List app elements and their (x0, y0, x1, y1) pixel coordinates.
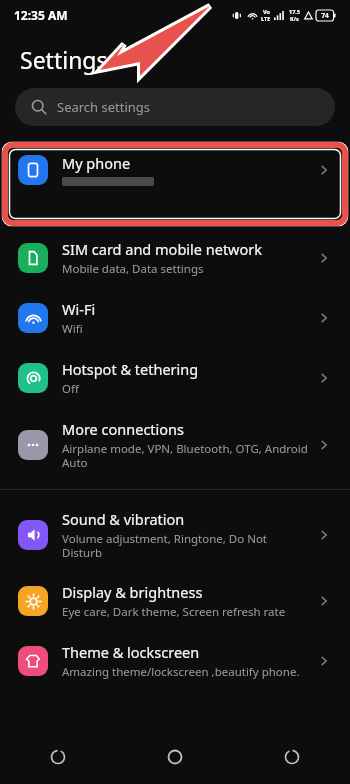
staticText: 12:35 AM (14, 7, 68, 23)
staticText: Wi-Fi (62, 299, 96, 319)
staticText: Off (62, 381, 79, 397)
staticText: Search settings (57, 98, 151, 116)
staticText: Mobile data, Data settings (62, 261, 204, 277)
staticText: Airplane mode, VPN, Bluetooth, OTG, Andr… (62, 441, 308, 470)
staticText: Volume adjustment, Ringtone, Do Not Dist… (62, 531, 308, 560)
button[interactable]: My phone (0, 142, 350, 197)
button[interactable]: Hotspot & tethering (0, 348, 350, 408)
button[interactable]: Search settings (15, 88, 335, 126)
staticText: K/s (290, 15, 299, 22)
staticText: Vo (263, 8, 270, 15)
button[interactable]: Display & brightness (0, 571, 350, 631)
button[interactable]: Theme & lockscreen (0, 631, 350, 691)
staticText: Wifi (62, 321, 83, 337)
staticText: Theme & lockscreen (62, 642, 200, 662)
staticText: Amazing theme/lockscreen ,beautify phone… (62, 664, 300, 680)
button[interactable]: Sound & vibration (0, 498, 350, 571)
staticText: My phone (62, 153, 131, 173)
staticText: 17.5 (289, 8, 300, 15)
staticText: More connections (62, 419, 185, 439)
staticText: Eye care, Dark theme, Screen refresh rat… (62, 604, 286, 620)
staticText: SIM card and mobile network (62, 239, 263, 259)
staticText: Hotspot & tethering (62, 359, 199, 379)
button[interactable]: Wi-Fi (0, 288, 350, 348)
staticText: Settings (20, 44, 108, 75)
staticText: 74 (321, 11, 329, 20)
button[interactable]: SIM card and mobile network (0, 228, 350, 288)
staticText: Display & brightness (62, 582, 203, 602)
staticText: LTE (261, 15, 271, 22)
button[interactable]: More connections (0, 408, 350, 481)
button[interactable]: Back (233, 730, 350, 784)
button[interactable]: Home (116, 730, 233, 784)
button[interactable]: Recents (0, 730, 116, 784)
staticText: Sound & vibration (62, 509, 185, 529)
